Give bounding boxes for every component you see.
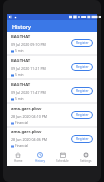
button[interactable]: BAGTHAT <box>7 56 97 78</box>
button[interactable]: Register <box>71 39 93 47</box>
staticText: 09 Jul 2020 11:21 PM <box>11 66 46 71</box>
staticText: BAGTHAT <box>11 58 31 64</box>
button[interactable]: BAGTHAT <box>7 32 97 54</box>
staticText: Register <box>76 65 89 69</box>
button[interactable]: Register <box>71 87 93 95</box>
staticText: Register <box>76 113 89 117</box>
staticText: ama-garr-pbsv <box>11 129 42 135</box>
staticText: ama-garr-pbsv <box>11 106 42 112</box>
staticText: Register <box>76 41 89 45</box>
staticText: History <box>35 159 46 163</box>
button[interactable]: Register <box>71 111 93 119</box>
staticText: 09 Jul 2020 09:10 PM <box>11 42 46 47</box>
button[interactable]: Register <box>71 63 93 71</box>
staticText: BAGTHAT <box>11 34 31 40</box>
button[interactable]: ama-garr-pbsv <box>7 128 97 149</box>
staticText: 28 Jun 2020 04:06 PM <box>11 137 48 142</box>
staticText: 5 min <box>15 73 24 77</box>
button[interactable]: Register <box>71 135 93 143</box>
staticText: Register <box>76 89 89 93</box>
staticText: BAGTHAT <box>11 82 31 88</box>
staticText: 09 Jul 2020 11:47 PM <box>11 90 46 95</box>
staticText: 5 min <box>15 49 24 53</box>
button[interactable]: Settings <box>74 149 97 166</box>
staticText: Settings <box>80 159 92 163</box>
staticText: History <box>12 23 31 30</box>
button[interactable]: History <box>29 149 51 166</box>
staticText: 28 Jun 2020 04:10 PM <box>11 114 48 119</box>
staticText: Financial <box>15 144 29 148</box>
staticText: Register <box>76 137 89 141</box>
staticText: Home <box>14 159 23 163</box>
button[interactable]: ama-garr-pbsv <box>7 104 97 126</box>
staticText: 5 min <box>15 97 24 101</box>
button[interactable]: BAGTHAT <box>7 80 97 102</box>
button[interactable]: Home <box>7 149 29 166</box>
staticText: Financial <box>15 121 29 125</box>
button[interactable]: Schedule <box>51 149 74 166</box>
staticText: Schedule <box>56 159 69 163</box>
